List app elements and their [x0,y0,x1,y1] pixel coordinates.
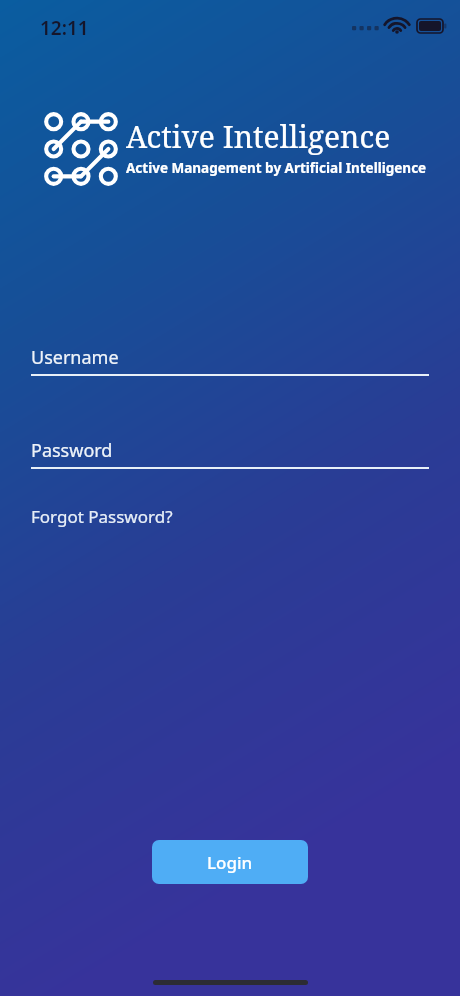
staticText: 12:11 [40,15,89,41]
button[interactable]: Forgot Password? [31,504,173,529]
staticText: Active Management by Artificial Intellig… [126,159,427,177]
staticText: Password [31,438,113,463]
staticText: Forgot Password? [31,505,173,528]
button[interactable]: Password [31,438,429,469]
staticText: Username [31,345,119,370]
button[interactable]: Login [152,840,308,884]
staticText: Login [207,851,253,874]
button[interactable]: Username [31,345,429,376]
staticText: Active Intelligence [126,116,391,157]
other: Active Intelligence logo [40,108,427,190]
